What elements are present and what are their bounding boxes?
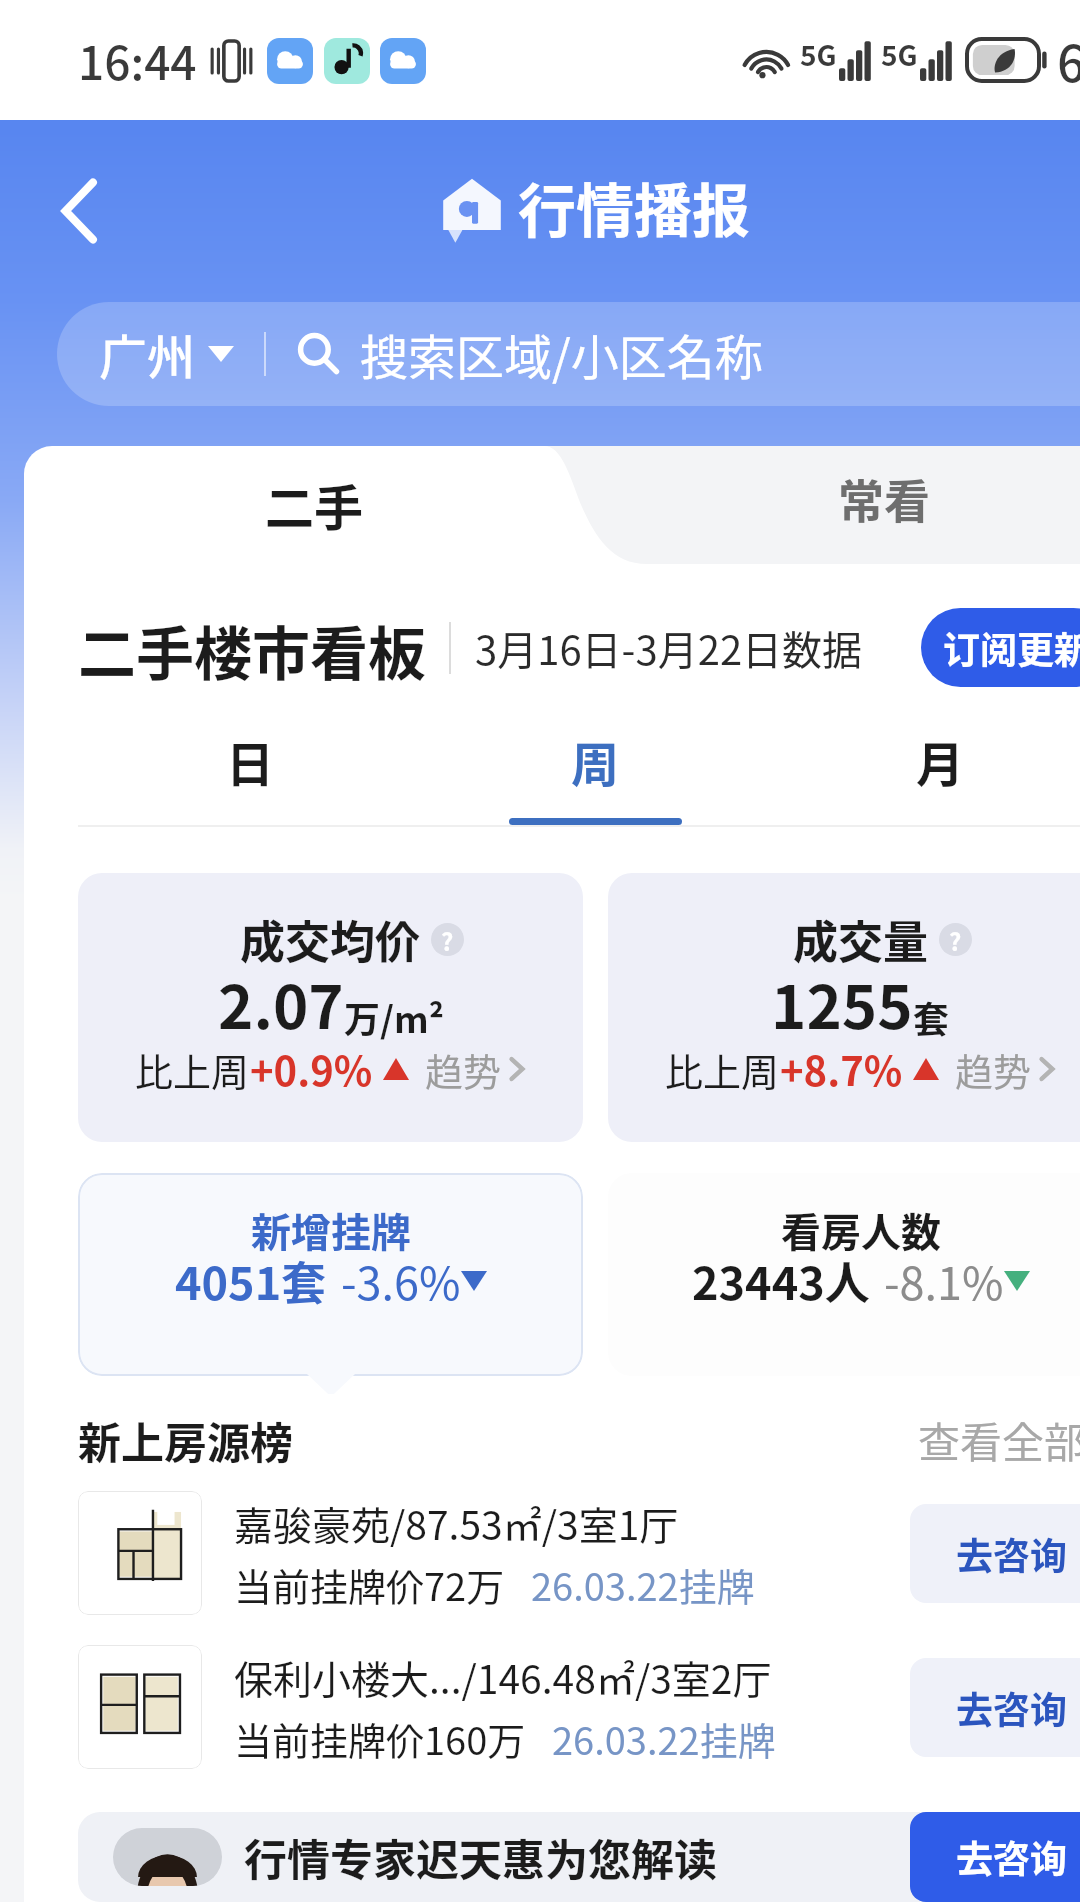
staticText: 广州 xyxy=(99,319,196,389)
staticText: 日 xyxy=(226,726,275,796)
button[interactable]: 新增挂牌 xyxy=(78,1173,583,1376)
staticText: 4051套 xyxy=(175,1248,327,1313)
staticText: 行情专家迟天惠为您解读 xyxy=(244,1826,717,1888)
staticText: 23443人 xyxy=(692,1248,870,1313)
button[interactable]: 二手 xyxy=(24,446,584,566)
staticText: 2.07 xyxy=(218,959,344,1046)
button[interactable]: 订阅更新 xyxy=(921,608,1080,687)
button[interactable]: 广州 xyxy=(57,302,1080,406)
staticText: 常看 xyxy=(838,465,930,532)
staticText: ? xyxy=(441,923,454,956)
staticText: 搜索区域/小区名称 xyxy=(360,319,763,389)
staticText: 保利小楼大.../146.48㎡/3室2厅 xyxy=(234,1649,772,1705)
staticText: 二手楼市看板 xyxy=(78,608,427,687)
staticText: 成交均价 xyxy=(240,907,421,972)
button[interactable]: 保利小楼大.../146.48㎡/3室2厅 xyxy=(78,1645,1080,1769)
staticText: ? xyxy=(949,923,962,956)
button[interactable]: 常看 xyxy=(559,446,1080,585)
staticText: -3.6% xyxy=(341,1248,461,1313)
staticText: 成交量 xyxy=(793,907,929,972)
staticText: 订阅更新 xyxy=(943,621,1080,675)
staticText: 查看全部 xyxy=(918,1409,1080,1465)
staticText: 行情播报 xyxy=(518,165,751,249)
staticText: 看房人数 xyxy=(781,1201,941,1259)
button[interactable]: 嘉骏豪苑/87.53㎡/3室1厅 xyxy=(78,1491,1080,1615)
staticText: -8.1% xyxy=(884,1248,1004,1313)
staticText: 去咨询 xyxy=(956,1830,1067,1884)
staticText: 嘉骏豪苑/87.53㎡/3室1厅 xyxy=(234,1495,679,1551)
button[interactable]: 日 xyxy=(78,726,423,825)
staticText: 当前挂牌价72万 xyxy=(234,1557,505,1612)
button[interactable]: 周 xyxy=(423,726,768,825)
staticText: 5G xyxy=(881,34,918,75)
staticText: 去咨询 xyxy=(956,1681,1067,1735)
button[interactable]: 成交量 xyxy=(608,873,1080,1142)
staticText: 当前挂牌价160万 xyxy=(234,1711,526,1766)
staticText: 16:44 xyxy=(78,27,197,94)
button[interactable]: 月 xyxy=(768,726,1080,825)
staticText: 万/m² xyxy=(344,991,444,1043)
button[interactable]: 看房人数 xyxy=(608,1173,1080,1376)
staticText: 比上周 xyxy=(135,1042,250,1097)
staticText: 去咨询 xyxy=(956,1527,1067,1581)
staticText: 1255 xyxy=(771,959,913,1046)
staticText: 比上周 xyxy=(665,1042,780,1097)
staticText: 趋势 xyxy=(955,1042,1032,1097)
staticText: 64 xyxy=(1057,24,1080,96)
staticText: 二手 xyxy=(265,469,364,540)
button[interactable]: 成交均价 xyxy=(78,873,583,1142)
staticText: +8.7% xyxy=(780,1040,903,1098)
staticText: 趋势 xyxy=(425,1042,502,1097)
button[interactable]: Back xyxy=(38,169,122,253)
button[interactable]: 去咨询 xyxy=(910,1658,1080,1757)
staticText: 26.03.22挂牌 xyxy=(552,1711,776,1766)
staticText: +0.9% xyxy=(250,1040,373,1098)
staticText: 新增挂牌 xyxy=(251,1201,411,1259)
button[interactable]: 查看全部 xyxy=(918,1409,1080,1465)
button[interactable]: 去咨询 xyxy=(910,1504,1080,1603)
staticText: 周 xyxy=(571,726,620,796)
staticText: 5G xyxy=(800,34,837,75)
button[interactable]: 去咨询 xyxy=(910,1812,1080,1902)
staticText: 新上房源榜 xyxy=(78,1409,293,1465)
staticText: 月 xyxy=(916,726,965,796)
button[interactable]: 行情专家迟天惠为您解读 xyxy=(78,1812,1080,1902)
staticText: 26.03.22挂牌 xyxy=(531,1557,755,1612)
staticText: 3月16日-3月22日数据 xyxy=(475,619,863,677)
staticText: 套 xyxy=(913,991,950,1043)
